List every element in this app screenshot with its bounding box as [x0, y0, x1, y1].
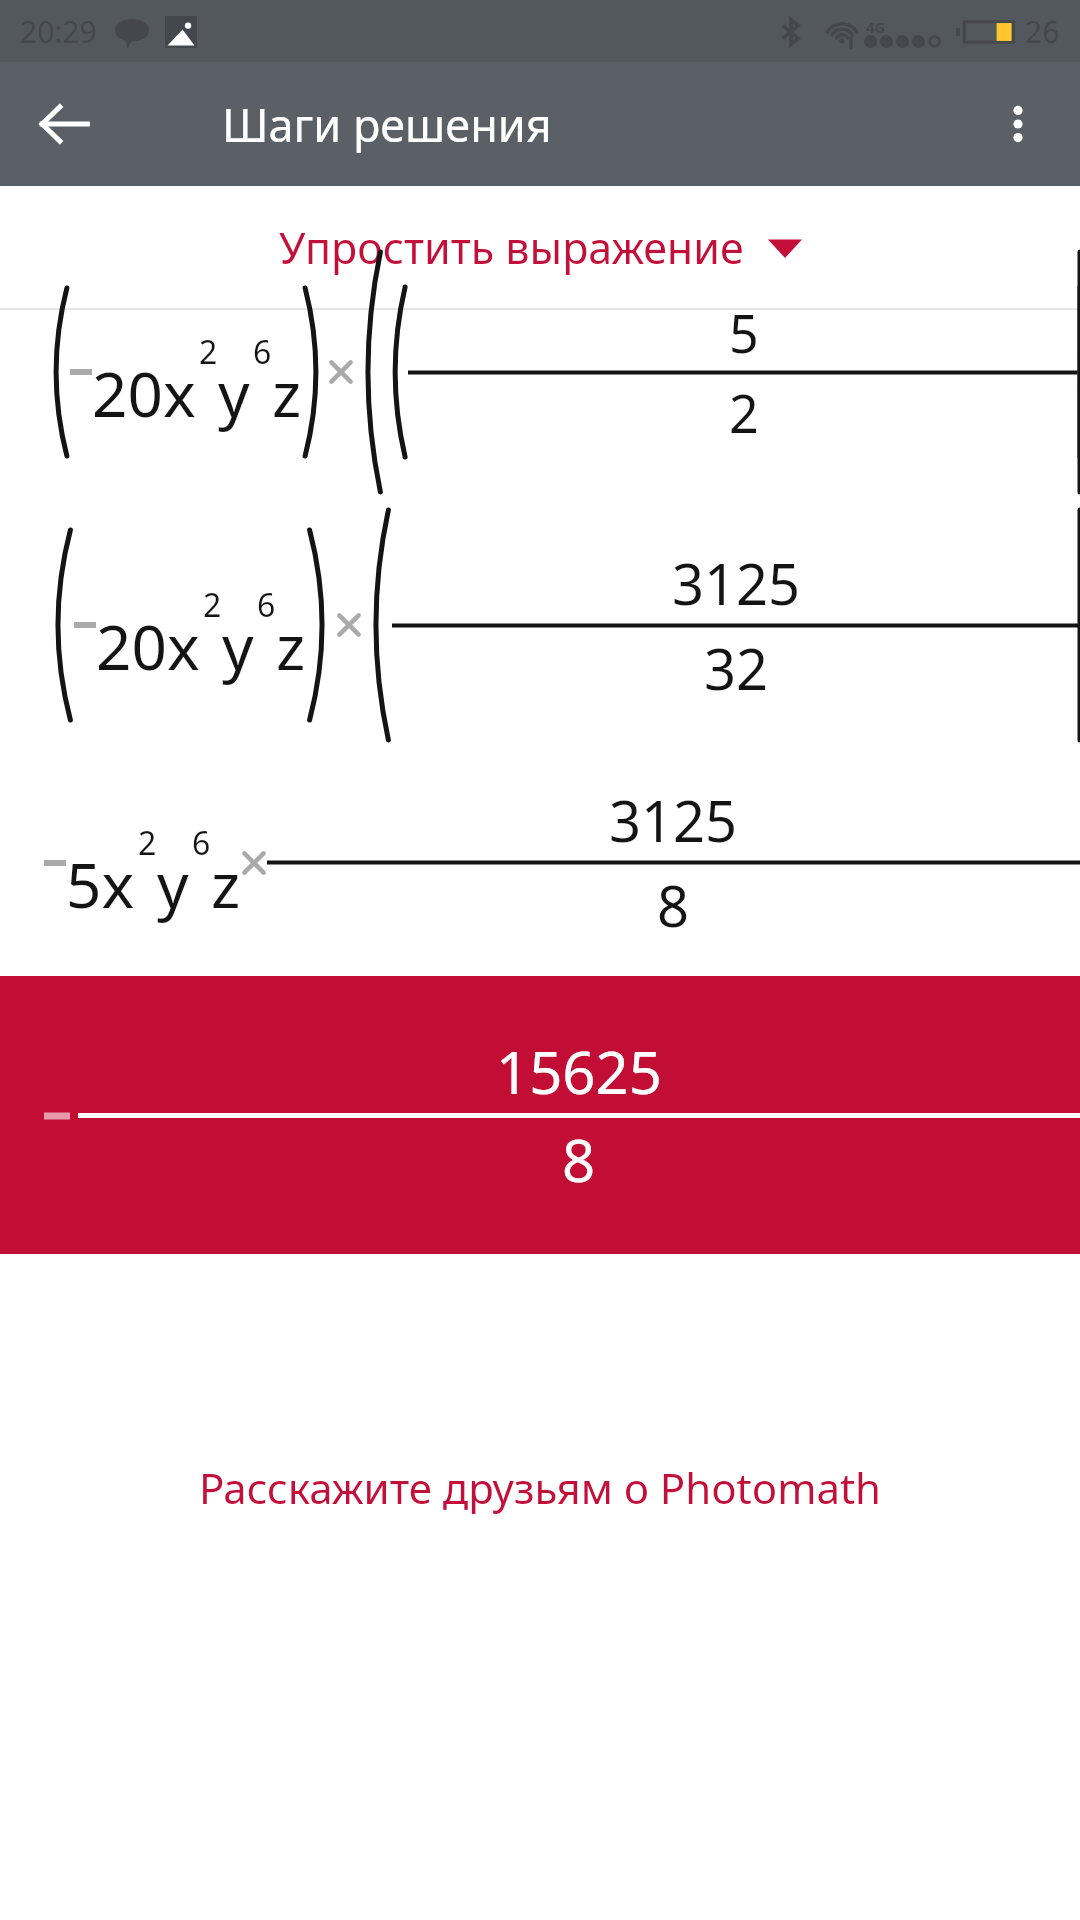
staticText: y: [157, 842, 189, 926]
staticText: 8: [657, 867, 690, 943]
staticText: 2: [138, 821, 157, 865]
button[interactable]: More options: [982, 88, 1054, 160]
staticText: 26: [1025, 11, 1060, 52]
staticText: y: [222, 604, 254, 688]
staticText: y: [218, 351, 250, 435]
staticText: 20:29: [20, 11, 97, 52]
staticText: Упростить выражение: [279, 218, 744, 277]
staticText: z: [272, 351, 302, 435]
staticText: z: [211, 842, 241, 926]
staticText: 5: [729, 297, 759, 368]
staticText: 15625: [496, 1032, 662, 1111]
staticText: 32: [704, 630, 769, 706]
staticText: 2: [203, 583, 222, 627]
button[interactable]: Back: [28, 88, 100, 160]
staticText: 20x: [92, 351, 196, 435]
button[interactable]: Упростить выражение: [0, 186, 1080, 308]
button[interactable]: Расскажите друзьям о Photomath: [179, 1439, 902, 1536]
staticText: 3125: [672, 545, 801, 621]
staticText: z: [276, 604, 306, 688]
staticText: 2: [199, 330, 218, 374]
staticText: 20x: [96, 604, 200, 688]
staticText: 4G: [866, 17, 886, 37]
staticText: 6: [192, 821, 211, 865]
staticText: 5x: [66, 842, 135, 926]
staticText: 6: [257, 583, 276, 627]
button[interactable]: 15625: [0, 976, 1080, 1254]
staticText: Шаги решения: [222, 94, 552, 155]
staticText: 2: [729, 377, 759, 448]
staticText: 8: [562, 1120, 596, 1199]
staticText: Расскажите друзьям о Photomath: [199, 1459, 882, 1516]
staticText: 6: [253, 330, 272, 374]
staticText: 3125: [609, 782, 738, 858]
